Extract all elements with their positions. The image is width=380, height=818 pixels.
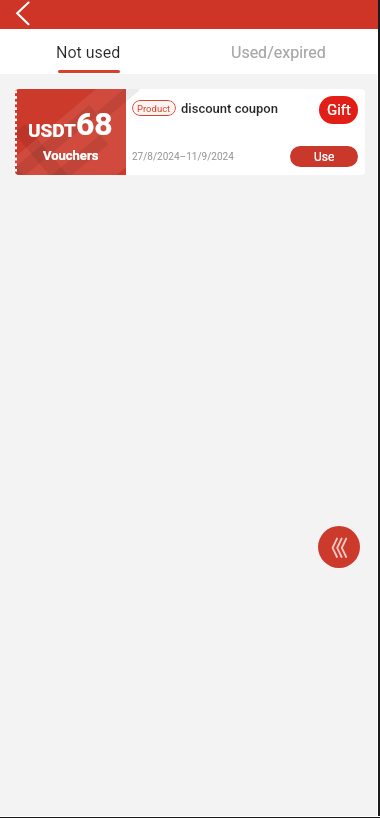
staticText: USDT [28, 119, 76, 141]
button[interactable]: Gift [319, 96, 358, 124]
staticText: Use [314, 150, 335, 164]
button[interactable]: USDT [15, 89, 365, 175]
staticText: Gift [327, 101, 351, 119]
staticText: 68 [76, 105, 113, 143]
staticText: Not used [56, 43, 121, 62]
button[interactable]: Use [290, 146, 358, 167]
button[interactable]: Not used [0, 29, 190, 74]
staticText: 27/8/2024–11/9/2024 [132, 151, 234, 163]
staticText: Product [137, 103, 171, 114]
staticText: discount coupon [181, 101, 278, 116]
button[interactable]: Collapse [318, 526, 360, 568]
staticText: Vouchers [43, 148, 99, 163]
button[interactable]: Used/expired [190, 29, 380, 74]
staticText: Used/expired [231, 43, 326, 62]
button[interactable]: Back [0, 0, 44, 29]
